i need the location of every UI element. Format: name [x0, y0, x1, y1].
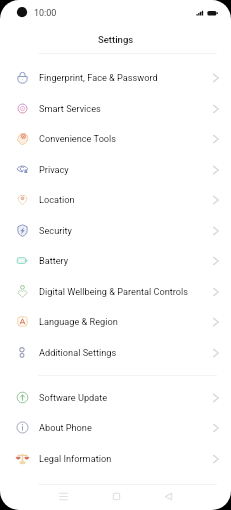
staticText: Smart Services	[39, 103, 209, 114]
button[interactable]: Legal Information	[0, 443, 231, 474]
staticText: Legal Information	[39, 453, 209, 464]
staticText: Digital Wellbeing & Parental Controls	[39, 286, 209, 297]
button[interactable]: Fingerprint, Face & Password	[0, 62, 231, 93]
button[interactable]: Home	[104, 484, 128, 508]
staticText: Software Update	[39, 392, 209, 403]
staticText: Additional Settings	[39, 347, 209, 358]
button[interactable]: Battery	[0, 245, 231, 276]
button[interactable]: Location	[0, 184, 231, 215]
button[interactable]: Software Update	[0, 382, 231, 413]
staticText: Location	[39, 194, 209, 205]
button[interactable]: About Phone	[0, 412, 231, 443]
button[interactable]: Security	[0, 215, 231, 246]
button[interactable]: Language & Region	[0, 306, 231, 337]
staticText: 10:00	[34, 8, 57, 19]
staticText: Battery	[39, 255, 209, 266]
staticText: Fingerprint, Face & Password	[39, 72, 209, 83]
staticText: Convenience Tools	[39, 133, 209, 144]
button[interactable]: Recents	[51, 484, 75, 508]
staticText: Language & Region	[39, 316, 209, 327]
button[interactable]: Smart Services	[0, 93, 231, 124]
button[interactable]: Privacy	[0, 154, 231, 185]
button[interactable]: Convenience Tools	[0, 123, 231, 154]
button[interactable]: Back	[156, 484, 180, 508]
button[interactable]: Additional Settings	[0, 337, 231, 368]
staticText: Privacy	[39, 164, 209, 175]
staticText: Settings	[98, 34, 134, 45]
staticText: About Phone	[39, 422, 209, 433]
button[interactable]: Digital Wellbeing & Parental Controls	[0, 276, 231, 307]
staticText: Security	[39, 225, 209, 236]
